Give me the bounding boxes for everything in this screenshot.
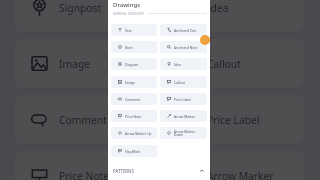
button[interactable]: Arrow Marker	[163, 151, 304, 180]
staticText: Anchored Text	[174, 28, 197, 32]
button[interactable]: Callout	[163, 39, 304, 88]
button[interactable]: Price Label	[163, 95, 304, 144]
staticText: PATTERNS	[113, 168, 134, 174]
staticText: Note	[125, 45, 133, 49]
staticText: Arrow Marker Up	[125, 131, 152, 135]
button[interactable]: Image	[15, 39, 156, 88]
staticText: GENERAL CATEGORY	[113, 12, 144, 16]
staticText: Idea	[174, 62, 181, 66]
button[interactable]: Idea	[163, 0, 304, 32]
button[interactable]: Flag Mark	[111, 145, 157, 157]
button[interactable]: Arrow Marker Up	[111, 127, 157, 139]
staticText: Drawings	[113, 1, 141, 9]
button[interactable]: Price Note	[15, 151, 156, 180]
staticText: Price Label	[207, 113, 260, 127]
staticText: Price Note	[125, 114, 142, 118]
button[interactable]: Price Label	[160, 93, 207, 105]
staticText: Callout	[174, 80, 185, 84]
button[interactable]: Text	[111, 24, 157, 36]
button[interactable]: Comment	[15, 95, 156, 144]
button[interactable]: Comment	[111, 93, 157, 105]
staticText: Arrow Marker	[207, 169, 274, 180]
staticText: Arrow Marker	[174, 114, 196, 118]
button[interactable]: Anchored Note	[160, 41, 207, 53]
staticText: Price Note	[59, 169, 110, 180]
staticText: Comment	[125, 97, 141, 101]
staticText: Anchored Note	[174, 45, 198, 49]
staticText: Arrow Marker Down	[174, 129, 196, 137]
button[interactable]: Image	[111, 76, 157, 88]
staticText: Callout	[207, 57, 241, 71]
button[interactable]: Callout	[160, 76, 207, 88]
button[interactable]: Note	[111, 41, 157, 53]
staticText: Signpost	[59, 1, 102, 15]
button[interactable]: Arrow Marker	[160, 110, 207, 122]
staticText: Diagram	[125, 62, 139, 66]
button[interactable]: Diagram	[111, 58, 157, 70]
staticText: Price Label	[174, 97, 191, 101]
staticText: Idea	[207, 1, 229, 15]
button[interactable]: Anchored Text	[160, 24, 207, 36]
button[interactable]: Arrow Marker Down	[160, 127, 207, 139]
button[interactable]: Idea	[160, 58, 207, 70]
staticText: Image	[59, 57, 91, 71]
button[interactable]: Price Note	[111, 110, 157, 122]
staticText: Text	[125, 28, 132, 32]
staticText: Flag Mark	[125, 149, 141, 153]
button[interactable]: Signpost	[15, 0, 156, 32]
button[interactable]: PATTERNS	[108, 165, 210, 176]
staticText: Image	[125, 80, 135, 84]
staticText: Comment	[59, 113, 107, 127]
